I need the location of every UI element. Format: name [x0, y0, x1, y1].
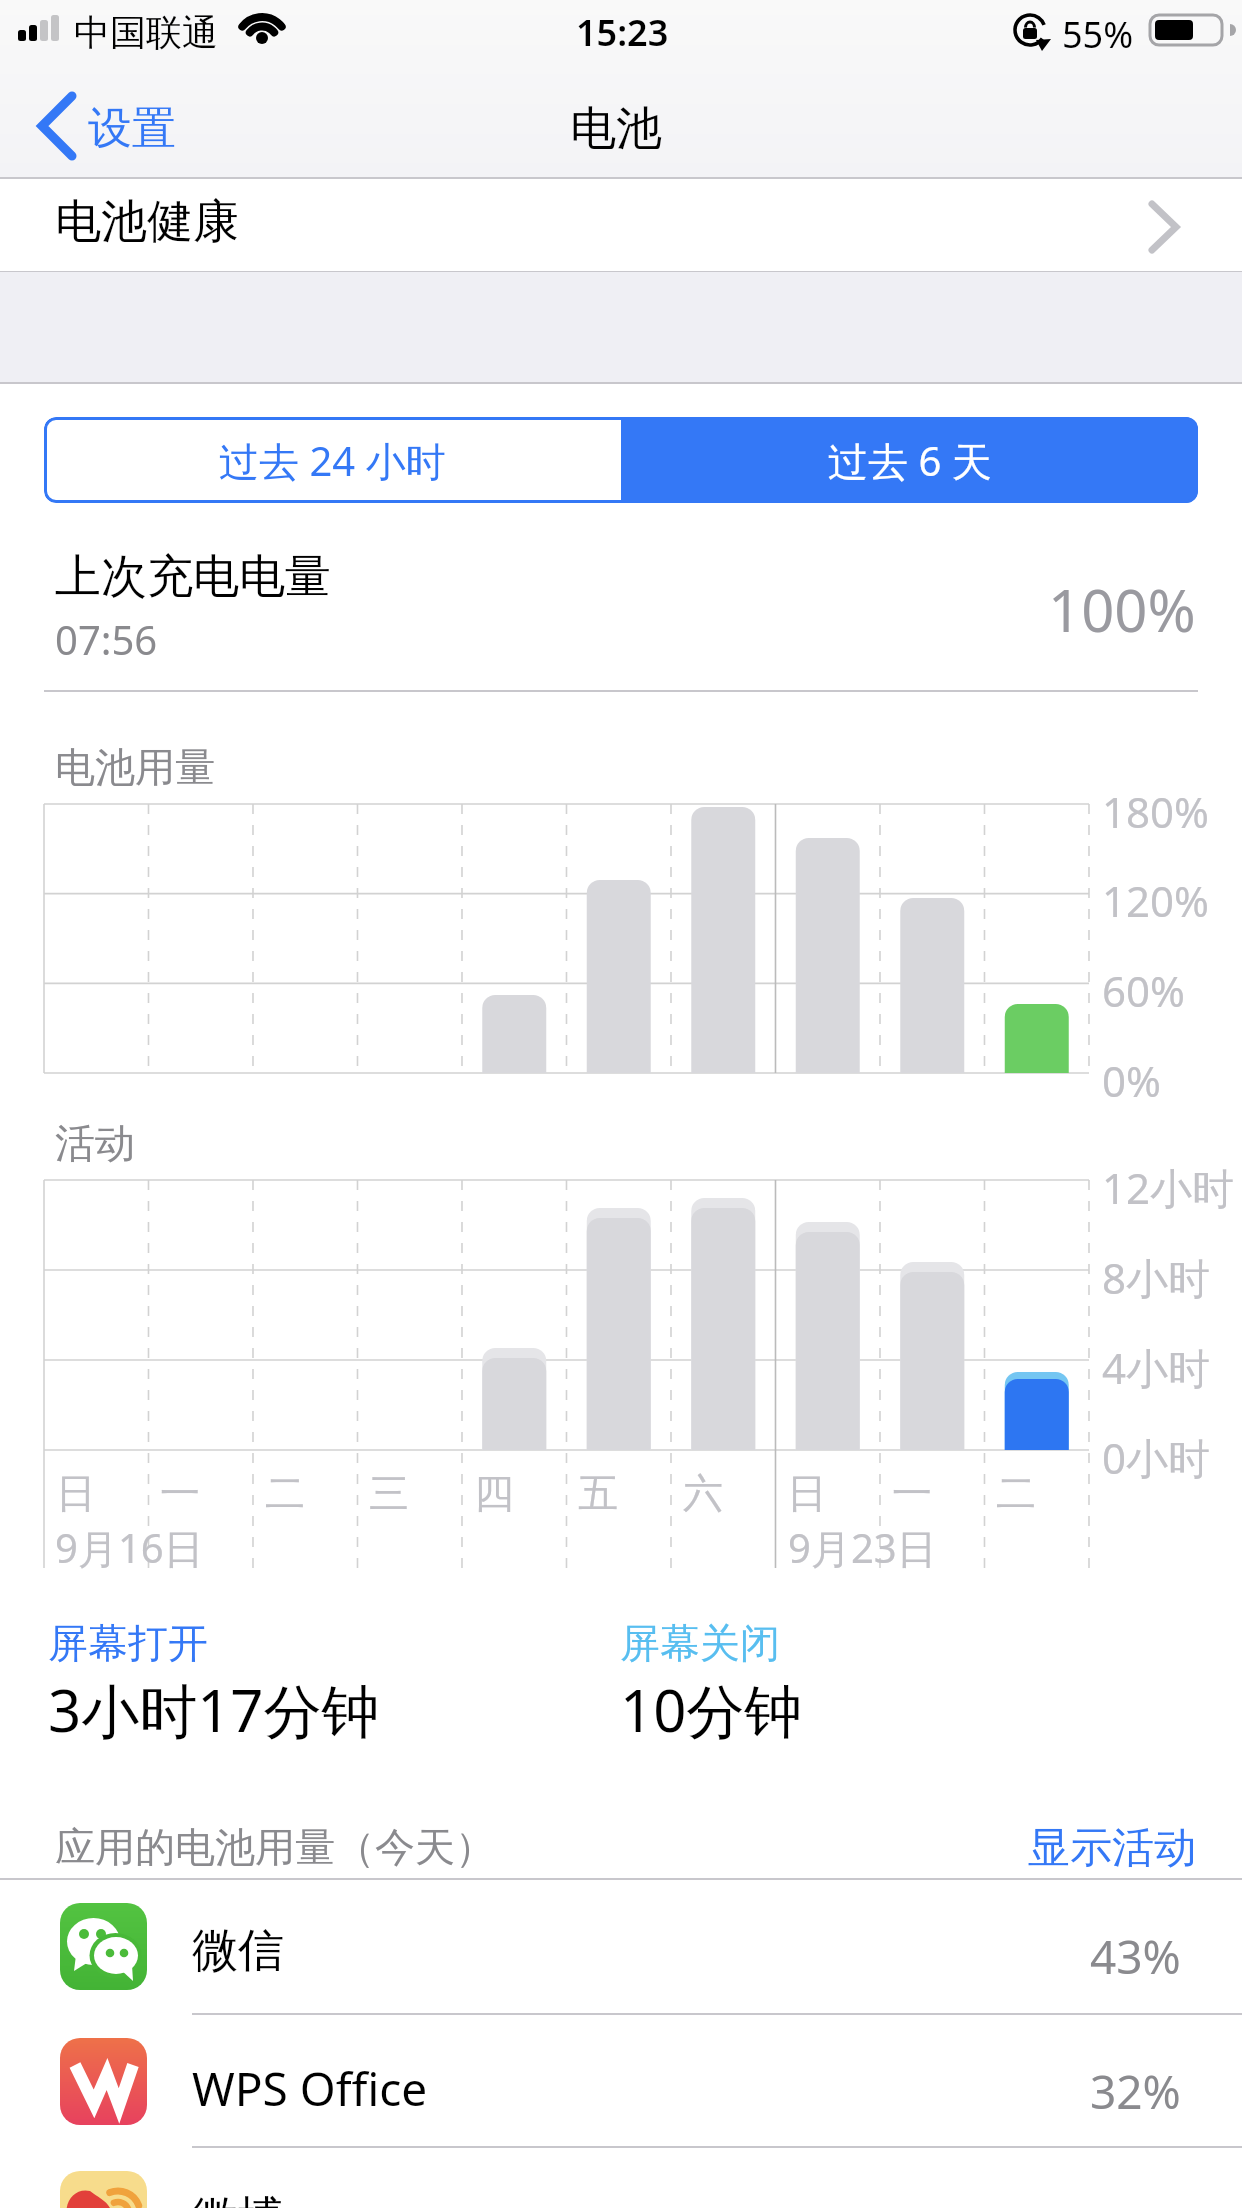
- staticText: 电池健康: [55, 193, 239, 251]
- staticText: 二: [265, 1468, 305, 1518]
- button[interactable]: 过去 24 小时: [44, 417, 621, 503]
- button[interactable]: 微信: [0, 1879, 1242, 2013]
- staticText: 日: [56, 1468, 96, 1518]
- staticText: 过去 24 小时: [219, 433, 446, 488]
- button[interactable]: 微博: [0, 2147, 1242, 2208]
- staticText: WPS Office: [192, 2057, 428, 2120]
- staticText: 32%: [1090, 2060, 1181, 2123]
- staticText: 应用的电池用量（今天）: [55, 1822, 495, 1872]
- staticText: 一: [892, 1468, 932, 1518]
- staticText: 100%: [1048, 570, 1196, 649]
- button[interactable]: 过去 6 天: [621, 417, 1198, 503]
- staticText: 微信: [192, 1922, 284, 1980]
- staticText: 日: [787, 1468, 827, 1518]
- staticText: 3小时17分钟: [48, 1670, 380, 1749]
- staticText: 微博: [192, 2190, 284, 2208]
- staticText: 9月23日: [788, 1520, 937, 1575]
- staticText: 8小时: [1102, 1249, 1211, 1306]
- button[interactable]: WPS Office: [0, 2014, 1242, 2148]
- staticText: 一: [160, 1468, 200, 1518]
- staticText: 9月16日: [55, 1520, 204, 1575]
- staticText: 60%: [1102, 962, 1185, 1019]
- button[interactable]: 显示活动: [980, 1815, 1200, 1871]
- staticText: 电池: [570, 100, 662, 158]
- staticText: 15:23: [576, 8, 669, 57]
- staticText: 三: [369, 1468, 409, 1518]
- staticText: 4小时: [1102, 1339, 1211, 1396]
- staticText: 43%: [1090, 1925, 1181, 1988]
- staticText: 五: [578, 1468, 618, 1518]
- staticText: 中国联通: [74, 10, 218, 55]
- staticText: 六: [683, 1468, 723, 1518]
- staticText: 设置: [88, 101, 176, 156]
- staticText: 二: [996, 1468, 1036, 1518]
- staticText: 180%: [1102, 783, 1209, 840]
- button[interactable]: 电池健康: [0, 179, 1242, 271]
- staticText: 屏幕打开: [48, 1618, 208, 1668]
- staticText: 活动: [55, 1118, 135, 1168]
- staticText: 屏幕关闭: [620, 1618, 780, 1668]
- staticText: 55%: [1062, 10, 1134, 59]
- button[interactable]: 设置: [30, 92, 200, 162]
- staticText: 07:56: [55, 612, 158, 666]
- staticText: 10分钟: [620, 1670, 803, 1749]
- staticText: 上次充电电量: [55, 548, 331, 606]
- staticText: 120%: [1102, 872, 1209, 929]
- staticText: 0小时: [1102, 1429, 1211, 1486]
- staticText: 12小时: [1102, 1159, 1235, 1216]
- staticText: 过去 6 天: [828, 433, 992, 488]
- staticText: 显示活动: [1028, 1822, 1196, 1875]
- staticText: 电池用量: [55, 742, 215, 792]
- staticText: 0%: [1102, 1052, 1161, 1109]
- staticText: 四: [474, 1468, 514, 1518]
